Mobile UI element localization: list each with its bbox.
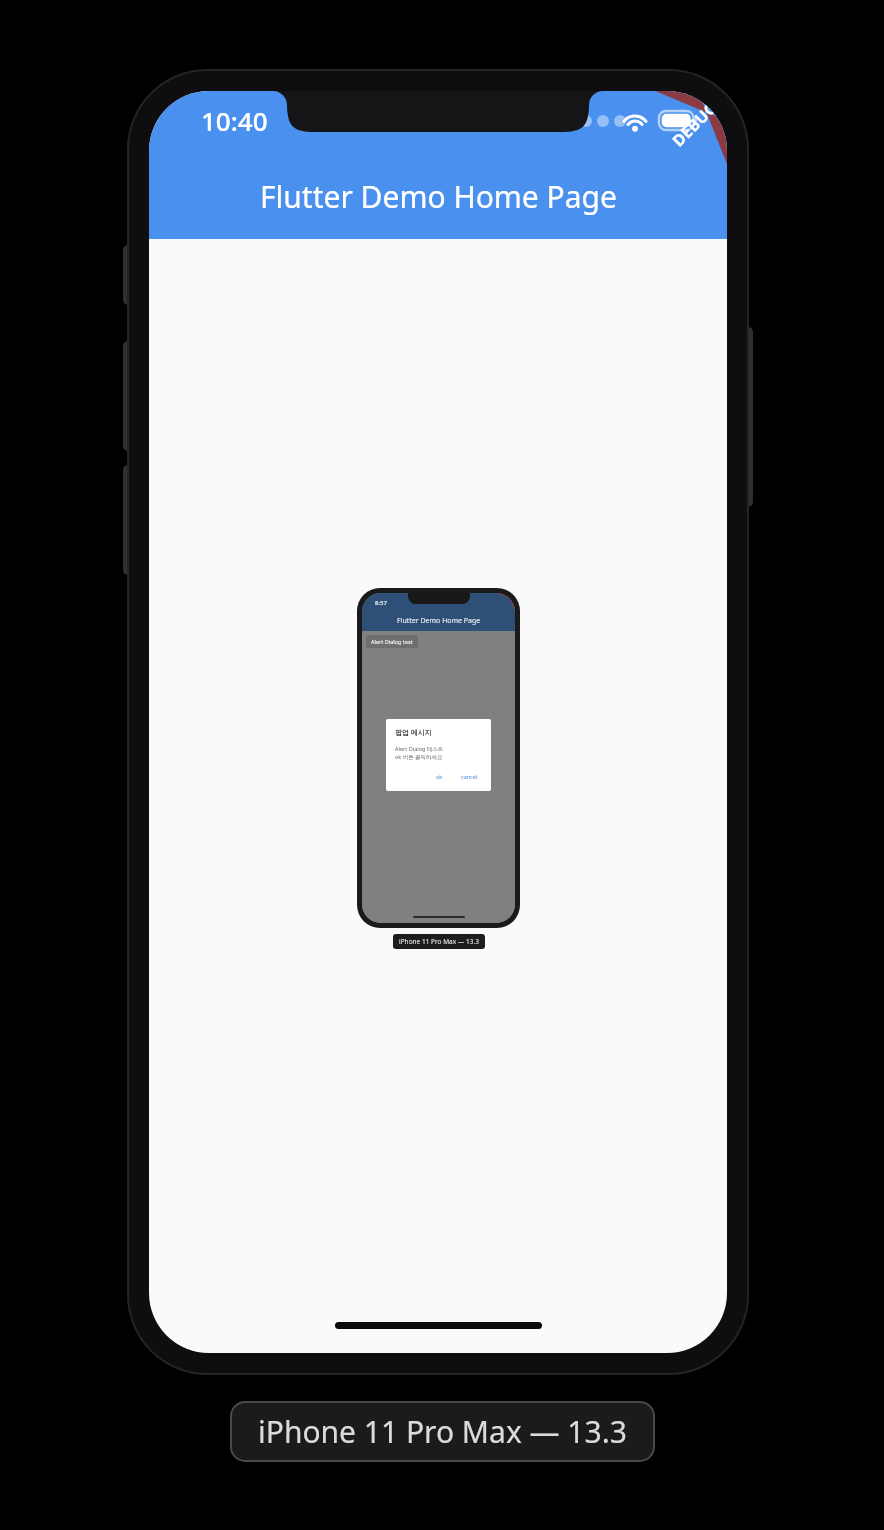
button[interactable]: iPhone 11 Pro Max — 13.3 [230,1401,655,1462]
staticText: iPhone 11 Pro Max — 13.3 [258,1411,627,1452]
staticText: 8:57 [375,599,387,607]
button[interactable]: Alert Dialog test [366,635,418,648]
staticText: ok [436,773,443,780]
staticText: ok 버튼 클릭하세요 [395,753,443,761]
staticText: 10:40 [201,103,268,138]
staticText: Flutter Demo Home Page [260,176,617,217]
button[interactable]: ok [430,771,449,782]
staticText: iPhone 11 Pro Max — 13.3 [399,937,479,946]
button[interactable]: cancel [457,771,482,782]
staticText: cancel [461,773,478,780]
staticText: 팝업 메시지 [395,728,432,738]
staticText: Alert Dialog 테스트 [395,745,444,753]
staticText: DEBUG [667,97,722,151]
staticText: Flutter Demo Home Page [397,616,481,626]
staticText: Alert Dialog test [371,638,413,645]
other: Debug banner [625,91,727,193]
